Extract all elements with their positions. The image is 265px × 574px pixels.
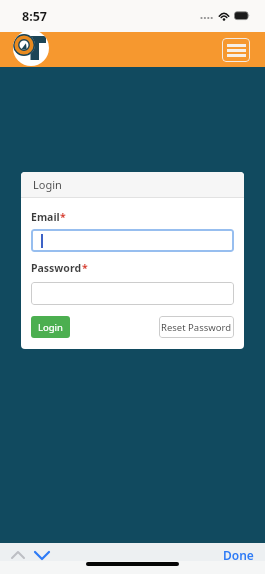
button[interactable] (11, 551, 25, 559)
staticText: Login (33, 177, 62, 192)
staticText: Done (223, 547, 254, 563)
button[interactable] (31, 229, 234, 252)
button[interactable] (31, 282, 234, 305)
button[interactable]: Done (223, 547, 254, 563)
staticText: Reset Password (161, 321, 232, 334)
button[interactable] (34, 551, 50, 560)
button[interactable] (13, 30, 49, 66)
button[interactable]: Reset Password (159, 316, 234, 338)
button[interactable]: Login (31, 316, 70, 338)
staticText: * (60, 210, 66, 224)
button[interactable] (222, 38, 250, 62)
staticText: * (82, 261, 88, 275)
staticText: 8:57 (22, 8, 47, 25)
staticText: Email (31, 210, 60, 224)
staticText: Login (38, 321, 63, 334)
staticText: Password (31, 261, 82, 275)
